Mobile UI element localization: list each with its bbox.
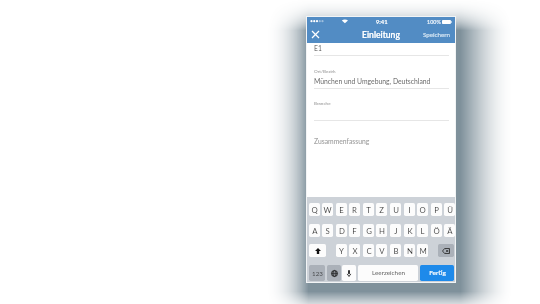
button[interactable]: Q	[309, 203, 320, 216]
button[interactable]: R	[349, 203, 360, 216]
button[interactable]: Ö	[431, 224, 442, 237]
staticText: L	[420, 226, 425, 235]
button[interactable]: Leerzeichen	[358, 265, 418, 281]
button[interactable]: A	[309, 224, 320, 237]
button[interactable]: E	[336, 203, 347, 216]
staticText: Ä	[447, 226, 453, 235]
button[interactable]: L	[417, 224, 428, 237]
staticText: M	[419, 246, 427, 255]
staticText: N	[407, 246, 413, 255]
button[interactable]: Y	[336, 244, 347, 257]
button[interactable]: M	[417, 244, 428, 257]
staticText: A	[312, 226, 318, 235]
button[interactable]: E1	[307, 43, 455, 197]
staticText: G	[366, 226, 372, 235]
staticText: H	[379, 226, 385, 235]
button[interactable]: Dictate	[342, 265, 356, 281]
button[interactable]: Shift	[309, 244, 326, 257]
staticText: Branche	[314, 100, 331, 106]
staticText: Fertig	[429, 269, 446, 277]
button[interactable]: K	[404, 224, 415, 237]
staticText: J	[394, 226, 398, 235]
button[interactable]: Ü	[444, 203, 455, 216]
staticText: B	[393, 246, 399, 255]
button[interactable]: C	[363, 244, 374, 257]
staticText: 9:41	[376, 18, 388, 25]
button[interactable]: I	[404, 203, 415, 216]
staticText: V	[379, 246, 385, 255]
staticText: München und Umgebung, Deutschland	[314, 77, 431, 85]
staticText: R	[352, 205, 357, 214]
button[interactable]: G	[363, 224, 374, 237]
staticText: 100%	[427, 19, 441, 25]
staticText: W	[323, 205, 332, 214]
button[interactable]: T	[363, 203, 374, 216]
staticText: Q	[311, 205, 318, 214]
button[interactable]: Z	[376, 203, 387, 216]
staticText: Z	[379, 205, 384, 214]
staticText: Ü	[447, 205, 453, 214]
button[interactable]: Ä	[444, 224, 455, 237]
button[interactable]: N	[404, 244, 415, 257]
button[interactable]: W	[322, 203, 333, 216]
button[interactable]: U	[390, 203, 401, 216]
staticText: P	[434, 205, 439, 214]
button[interactable]: Speichern	[423, 26, 455, 43]
button[interactable]: P	[431, 203, 442, 216]
staticText: Zusammenfassung	[314, 137, 370, 145]
button[interactable]: Fertig	[420, 265, 454, 281]
staticText: Y	[339, 246, 344, 255]
staticText: S	[325, 226, 330, 235]
button[interactable]: Backspace	[438, 244, 454, 257]
button[interactable]: D	[336, 224, 347, 237]
staticText: I	[408, 205, 411, 214]
staticText: Einleitung	[362, 30, 400, 40]
staticText: Leerzeichen	[372, 269, 405, 277]
staticText: U	[393, 205, 399, 214]
button[interactable]: H	[376, 224, 387, 237]
button[interactable]: X	[349, 244, 360, 257]
staticText: E1	[314, 44, 322, 52]
staticText: Ort/Bezirk	[314, 68, 336, 74]
staticText: 123	[312, 270, 323, 277]
staticText: K	[407, 226, 413, 235]
staticText: X	[352, 246, 358, 255]
staticText: C	[366, 246, 372, 255]
button[interactable]: F	[349, 224, 360, 237]
button[interactable]: Switch keyboard	[327, 265, 341, 281]
button[interactable]: 123	[309, 265, 325, 281]
button[interactable]: O	[417, 203, 428, 216]
staticText: E	[339, 205, 344, 214]
staticText: Speichern	[423, 31, 450, 38]
button[interactable]: J	[390, 224, 401, 237]
staticText: T	[366, 205, 371, 214]
button[interactable]: S	[322, 224, 333, 237]
staticText: F	[352, 226, 357, 235]
staticText: O	[419, 205, 426, 214]
button[interactable]: Close	[307, 26, 324, 43]
button[interactable]: B	[390, 244, 401, 257]
staticText: Ö	[433, 226, 440, 235]
staticText: D	[339, 226, 345, 235]
button[interactable]: V	[376, 244, 387, 257]
